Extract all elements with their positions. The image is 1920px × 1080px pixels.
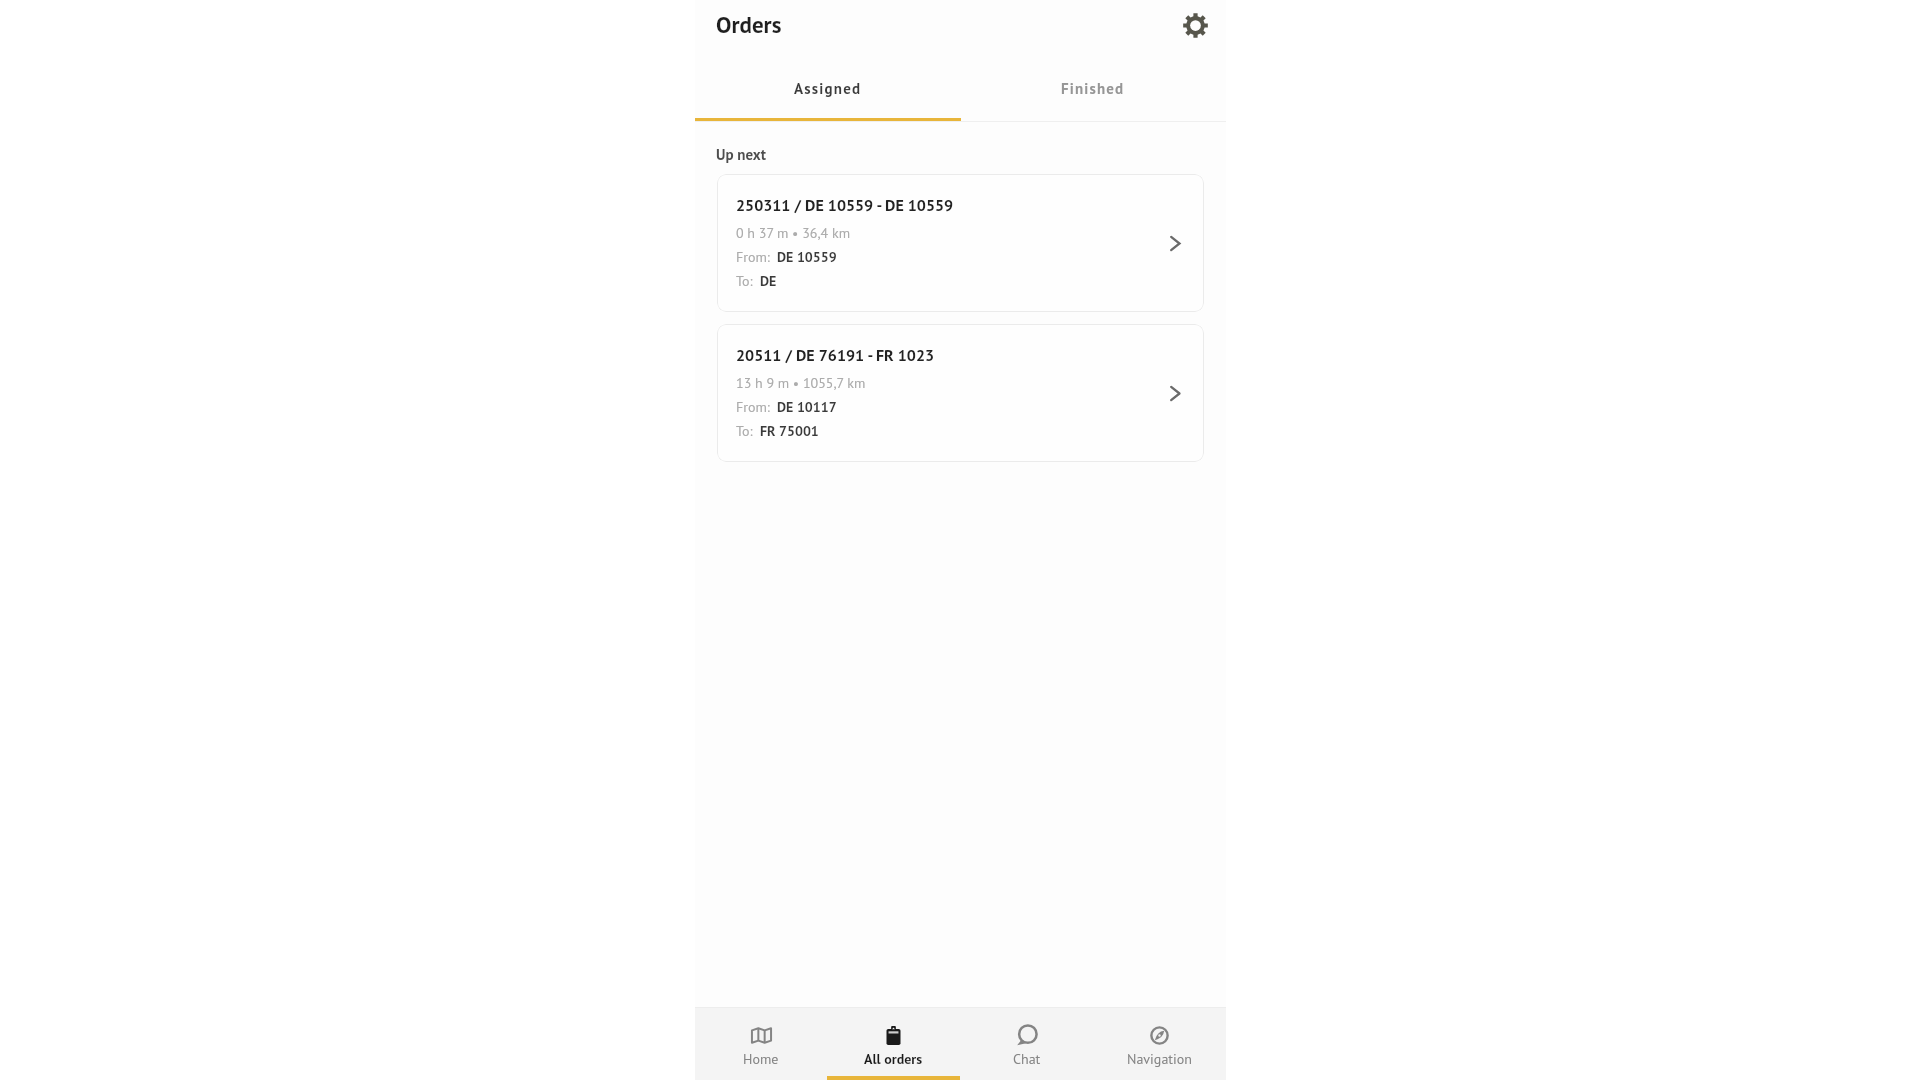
staticText: Chat	[1013, 1050, 1041, 1068]
staticText: DE	[760, 272, 777, 290]
staticText: FR 75001	[760, 422, 819, 440]
staticText: Finished	[1061, 79, 1125, 98]
staticText: Orders	[716, 10, 782, 40]
button[interactable]: 20511 / DE 76191 - FR 1023	[717, 324, 1204, 462]
staticText: DE 10117	[777, 398, 837, 416]
staticText: To:	[736, 272, 753, 290]
staticText: All orders	[864, 1050, 923, 1068]
staticText: Assigned	[794, 79, 862, 98]
button[interactable]: Home	[695, 1008, 827, 1080]
button[interactable]: Settings	[1177, 7, 1213, 43]
staticText: 250311 / DE 10559 - DE 10559	[736, 195, 954, 216]
staticText: 13 h 9 m • 1055,7 km	[736, 374, 866, 392]
staticText: From:	[736, 248, 770, 266]
button[interactable]: Finished	[960, 50, 1226, 121]
button[interactable]: Navigation	[1093, 1008, 1226, 1080]
staticText: 20511 / DE 76191 - FR 1023	[736, 345, 935, 366]
staticText: To:	[736, 422, 753, 440]
button[interactable]: All orders	[827, 1008, 960, 1080]
button[interactable]: Chat	[960, 1008, 1093, 1080]
staticText: DE 10559	[777, 248, 837, 266]
button[interactable]: 250311 / DE 10559 - DE 10559	[717, 174, 1204, 312]
button[interactable]: Assigned	[695, 50, 960, 121]
staticText: Up next	[716, 145, 766, 164]
staticText: 0 h 37 m • 36,4 km	[736, 224, 851, 242]
staticText: From:	[736, 398, 770, 416]
staticText: Home	[743, 1050, 779, 1068]
staticText: Navigation	[1127, 1050, 1192, 1068]
